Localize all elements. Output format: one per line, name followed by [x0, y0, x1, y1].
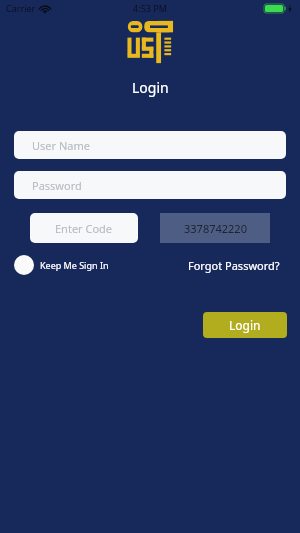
staticText: Forgot Password?	[188, 258, 280, 273]
button[interactable]: Login	[203, 312, 287, 338]
button[interactable]: Keep Me Sign In	[14, 254, 109, 276]
button[interactable]: Enter Code	[30, 213, 138, 243]
button[interactable]: Password	[14, 171, 286, 199]
staticText: Enter Code	[55, 221, 113, 236]
staticText: Login	[229, 317, 261, 333]
staticText: 3378742220	[184, 221, 247, 236]
staticText: User Name	[32, 138, 90, 153]
staticText: 4:53 PM	[133, 2, 167, 14]
staticText: Password	[32, 178, 82, 193]
staticText: Keep Me Sign In	[40, 259, 109, 271]
button[interactable]: Forgot Password?	[188, 255, 280, 275]
staticText: Carrier	[6, 2, 36, 14]
button[interactable]: 3378742220	[160, 213, 270, 243]
staticText: Login	[132, 78, 169, 97]
button[interactable]: User Name	[14, 131, 286, 159]
